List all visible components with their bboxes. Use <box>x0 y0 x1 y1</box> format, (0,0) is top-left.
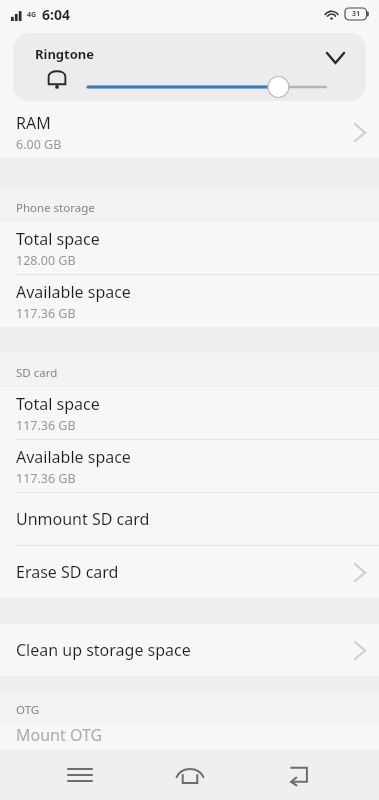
button[interactable]: RAM <box>0 106 379 158</box>
button[interactable]: Recent apps <box>50 750 110 800</box>
staticText: SD card <box>16 365 58 381</box>
staticText: Clean up storage space <box>16 639 355 661</box>
staticText: 6.00 GB <box>16 136 62 153</box>
staticText: Mount OTG <box>16 724 103 746</box>
button[interactable]: Total space <box>0 387 379 439</box>
staticText: Phone storage <box>16 200 95 216</box>
staticText: RAM <box>16 112 51 134</box>
staticText: Total space <box>16 393 100 415</box>
staticText: Erase SD card <box>16 561 355 583</box>
button[interactable]: Back <box>269 750 329 800</box>
staticText: 4G <box>27 10 37 20</box>
button[interactable]: Home <box>160 750 220 800</box>
staticText: 117.36 GB <box>16 305 76 322</box>
button[interactable]: Mount OTG <box>0 724 379 750</box>
button[interactable]: Available space <box>0 440 379 492</box>
button[interactable]: Erase SD card <box>0 546 379 598</box>
staticText: 31 <box>352 9 361 19</box>
button[interactable]: Collapse volume panel <box>318 41 352 75</box>
staticText: Total space <box>16 228 100 250</box>
staticText: 117.36 GB <box>16 417 76 434</box>
staticText: 6:04 <box>42 5 70 24</box>
staticText: 117.36 GB <box>16 470 76 487</box>
button[interactable]: Available space <box>0 275 379 327</box>
button[interactable]: Total space <box>0 222 379 274</box>
staticText: OTG <box>16 702 40 718</box>
button[interactable]: Clean up storage space <box>0 624 379 676</box>
staticText: 128.00 GB <box>16 252 76 269</box>
button[interactable]: Unmount SD card <box>0 493 379 545</box>
staticText: Available space <box>16 281 131 303</box>
staticText: Ringtone <box>35 45 95 63</box>
staticText: Available space <box>16 446 131 468</box>
staticText: Unmount SD card <box>16 508 365 530</box>
